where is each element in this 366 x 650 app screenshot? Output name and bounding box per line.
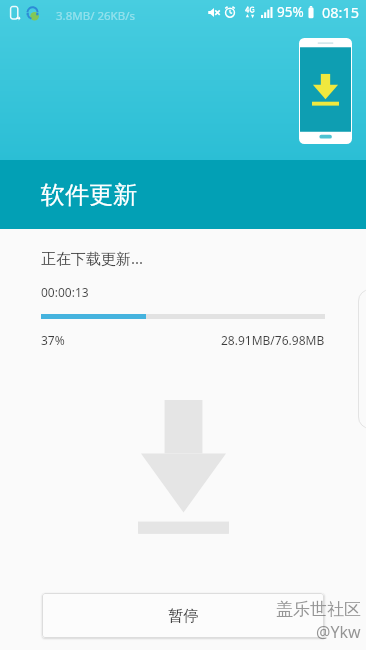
staticText: 软件更新 — [41, 180, 137, 210]
staticText: 08:15 — [322, 2, 360, 22]
staticText: 28.91MB/76.98MB — [221, 332, 325, 348]
staticText: 95% — [277, 3, 304, 21]
staticText: 盖乐世社区 — [276, 599, 361, 620]
other: Silent mode — [208, 7, 220, 18]
other: Alarm set — [224, 6, 236, 18]
staticText: 暂停 — [168, 606, 199, 626]
staticText: 37% — [41, 332, 65, 348]
other: Signal strength — [261, 7, 274, 18]
other: File transfer — [10, 6, 20, 20]
other: Headset connected — [26, 6, 39, 21]
staticText: 3.8MB/ 26KB/s — [56, 8, 135, 24]
staticText: 00:00:13 — [41, 284, 89, 300]
other: 4G network — [245, 6, 255, 19]
button[interactable]: 暂停 — [42, 593, 324, 638]
staticText: @Ykw — [316, 621, 361, 643]
other: Battery 95 percent — [307, 6, 315, 19]
staticText: 正在下载更新... — [41, 248, 144, 268]
